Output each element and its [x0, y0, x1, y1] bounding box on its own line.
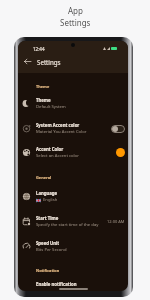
- staticText: Bits Per Second: [36, 247, 67, 253]
- staticText: Start Time: [36, 215, 59, 221]
- staticText: Notification: [36, 268, 60, 273]
- staticText: Accent Color: [36, 146, 64, 152]
- button[interactable]: Back: [24, 58, 31, 65]
- button[interactable]: Speed Unit: [18, 234, 128, 259]
- staticText: 12:44: [33, 46, 45, 52]
- button[interactable]: Enable notification: [18, 271, 128, 291]
- staticText: Specify the start time of the day: [36, 222, 99, 228]
- staticText: Default System: [36, 104, 66, 110]
- staticText: Theme: [36, 97, 51, 103]
- staticText: Settings: [60, 17, 91, 28]
- button[interactable]: Language: [18, 184, 128, 209]
- button[interactable]: System Accent color: [18, 116, 128, 141]
- button[interactable]: Accent color: [116, 148, 125, 157]
- staticText: Theme: [36, 84, 50, 89]
- staticText: Speed Unit: [36, 240, 60, 246]
- staticText: App: [68, 5, 83, 16]
- staticText: Language: [36, 190, 58, 196]
- button[interactable]: Toggle system accent: [111, 125, 125, 133]
- staticText: General: [36, 175, 52, 180]
- button[interactable]: Theme: [18, 91, 128, 116]
- staticText: English: [43, 197, 58, 203]
- staticText: 12:00 AM: [107, 219, 125, 224]
- staticText: Enable notification: [36, 281, 77, 287]
- staticText: Select an Accent color: [36, 153, 79, 159]
- button[interactable]: Start Time: [18, 209, 128, 234]
- staticText: Settings: [37, 58, 61, 66]
- staticText: System Accent color: [36, 122, 80, 128]
- staticText: Material You Accent Color: [36, 129, 87, 135]
- button[interactable]: Accent Color: [18, 140, 128, 165]
